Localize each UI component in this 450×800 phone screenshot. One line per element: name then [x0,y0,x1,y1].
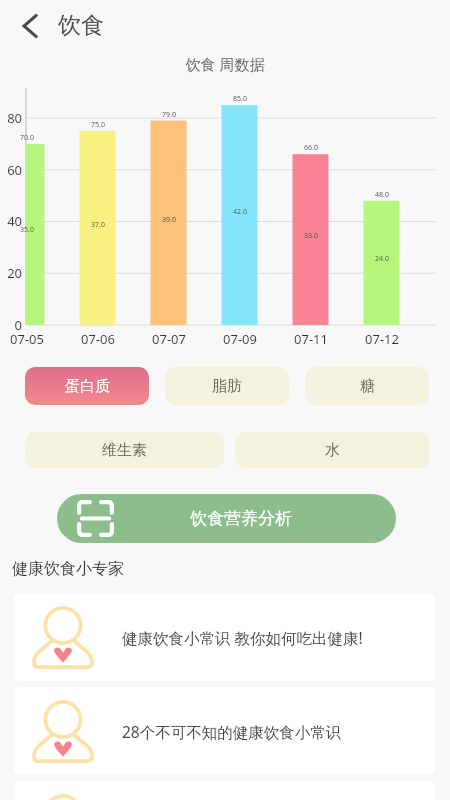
staticText: 07-09 [210,330,270,348]
staticText: 07-11 [281,330,341,348]
staticText: 20 [0,264,22,282]
staticText: 70.0 [0,133,57,143]
button[interactable]: 吃出健康的秘密 [14,781,435,800]
staticText: 维生素 [102,441,147,460]
button[interactable]: 水 [235,432,430,468]
button[interactable]: 维生素 [25,432,224,468]
button[interactable]: 28个不可不知的健康饮食小常识 [14,687,435,775]
button[interactable]: 脂肪 [165,367,289,405]
staticText: 07-07 [139,330,199,348]
staticText: 水 [325,441,340,460]
staticText: 60 [0,161,22,179]
button[interactable]: 糖 [305,367,429,405]
staticText: 80 [0,109,22,127]
button[interactable]: 蛋白质 [25,367,149,405]
staticText: 66.0 [281,143,341,153]
button[interactable]: 饮食营养分析 [57,494,396,543]
staticText: 48.0 [352,190,412,200]
staticText: 健康饮食小专家 [12,559,124,579]
staticText: 33.0 [281,231,341,241]
staticText: 蛋白质 [65,377,110,396]
staticText: 28个不可不知的健康饮食小常识 [122,721,342,742]
staticText: 07-06 [68,330,128,348]
staticText: 脂肪 [212,377,242,396]
staticText: 糖 [360,377,375,396]
staticText: 35.0 [0,225,57,235]
staticText: 75.0 [68,120,128,130]
staticText: 健康饮食小常识 教你如何吃出健康! [122,627,363,648]
staticText: 饮食营养分析 [100,508,382,529]
button[interactable]: Back [8,4,52,48]
staticText: 79.0 [139,110,199,120]
staticText: 24.0 [352,254,412,264]
staticText: 07-12 [352,330,412,348]
staticText: 40 [0,212,22,230]
staticText: 42.0 [210,207,270,217]
staticText: 07-05 [0,330,57,348]
staticText: 85.0 [210,94,270,104]
staticText: 37.0 [68,220,128,230]
staticText: 饮食 [58,11,104,40]
staticText: 39.0 [139,215,199,225]
staticText: 饮食 周数据 [0,54,450,74]
staticText: 0 [0,316,22,334]
button[interactable]: 健康饮食小常识 教你如何吃出健康! [14,593,435,681]
